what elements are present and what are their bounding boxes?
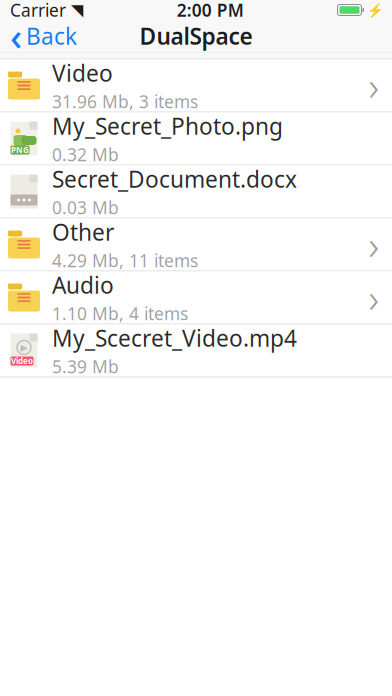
staticText: Secret_File.zip (52, 376, 202, 406)
button[interactable]: ‹ (0, 20, 87, 52)
staticText: DualSpace (139, 21, 252, 51)
button[interactable]: Audio (0, 271, 392, 324)
staticText: Carrier (10, 0, 66, 21)
staticText: Audio (52, 270, 114, 300)
staticText: › (368, 218, 379, 271)
staticText: ◥ (71, 1, 83, 19)
staticText: 31.96 Mb, 3 items (52, 90, 198, 113)
staticText: 4.29 Mb, 11 items (52, 249, 198, 272)
staticText: 0.03 Mb (52, 196, 119, 219)
staticText: Back (26, 21, 77, 51)
staticText: ‹ (10, 11, 22, 61)
button[interactable]: ▶ (0, 324, 392, 377)
staticText: PNG (11, 145, 29, 155)
staticText: 5.39 Mb (52, 355, 119, 378)
staticText: ▶ (20, 342, 27, 353)
staticText: My_Secret_Photo.png (52, 111, 283, 141)
staticText: › (368, 59, 379, 112)
button[interactable]: Video (0, 59, 392, 112)
staticText: Video (11, 356, 33, 366)
staticText: 2:00 PM (177, 0, 244, 21)
staticText: My_Scecret_Video.mp4 (52, 323, 297, 353)
staticText: ⚡ (367, 2, 384, 18)
button[interactable]: Secret_Document.docx (0, 165, 392, 218)
staticText: › (368, 271, 379, 324)
staticText: Secret_Document.docx (52, 164, 297, 194)
staticText: Other (52, 217, 114, 247)
staticText: 1.10 Mb, 4 items (52, 302, 188, 325)
staticText: 0.32 Mb (52, 143, 119, 166)
button[interactable]: PNG (0, 112, 392, 165)
button[interactable]: Other (0, 218, 392, 271)
staticText: Video (52, 58, 113, 88)
